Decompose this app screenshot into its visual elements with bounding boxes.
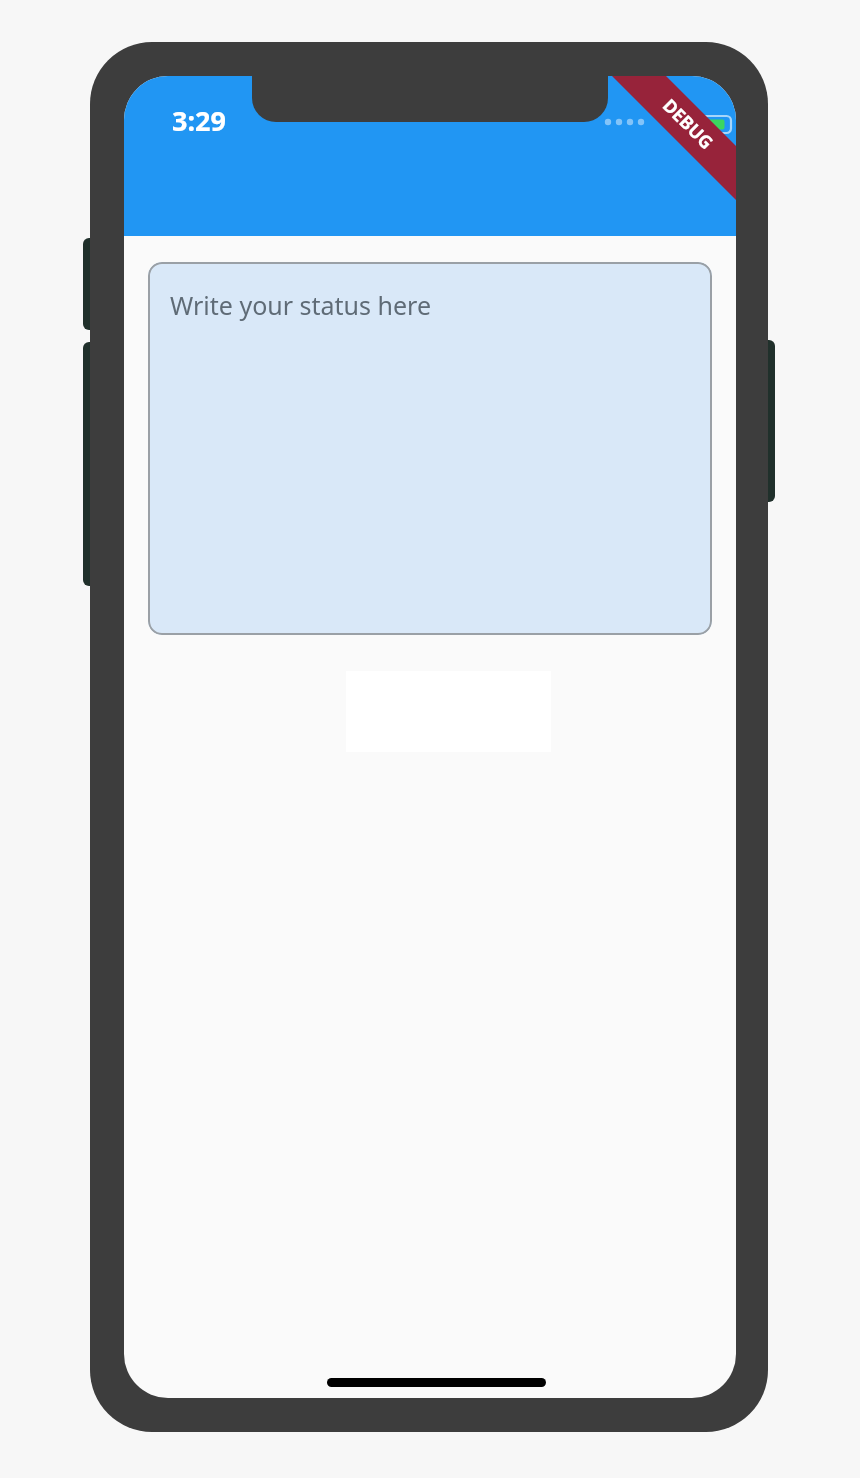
staticText: Write your status here (170, 288, 432, 322)
other: Silent switch (83, 238, 99, 330)
other: Power (759, 340, 775, 502)
button[interactable]: Write your status here (148, 262, 712, 635)
staticText: 3:29 (172, 102, 226, 139)
other: Volume up (83, 342, 99, 474)
other: Volume down (83, 454, 99, 586)
